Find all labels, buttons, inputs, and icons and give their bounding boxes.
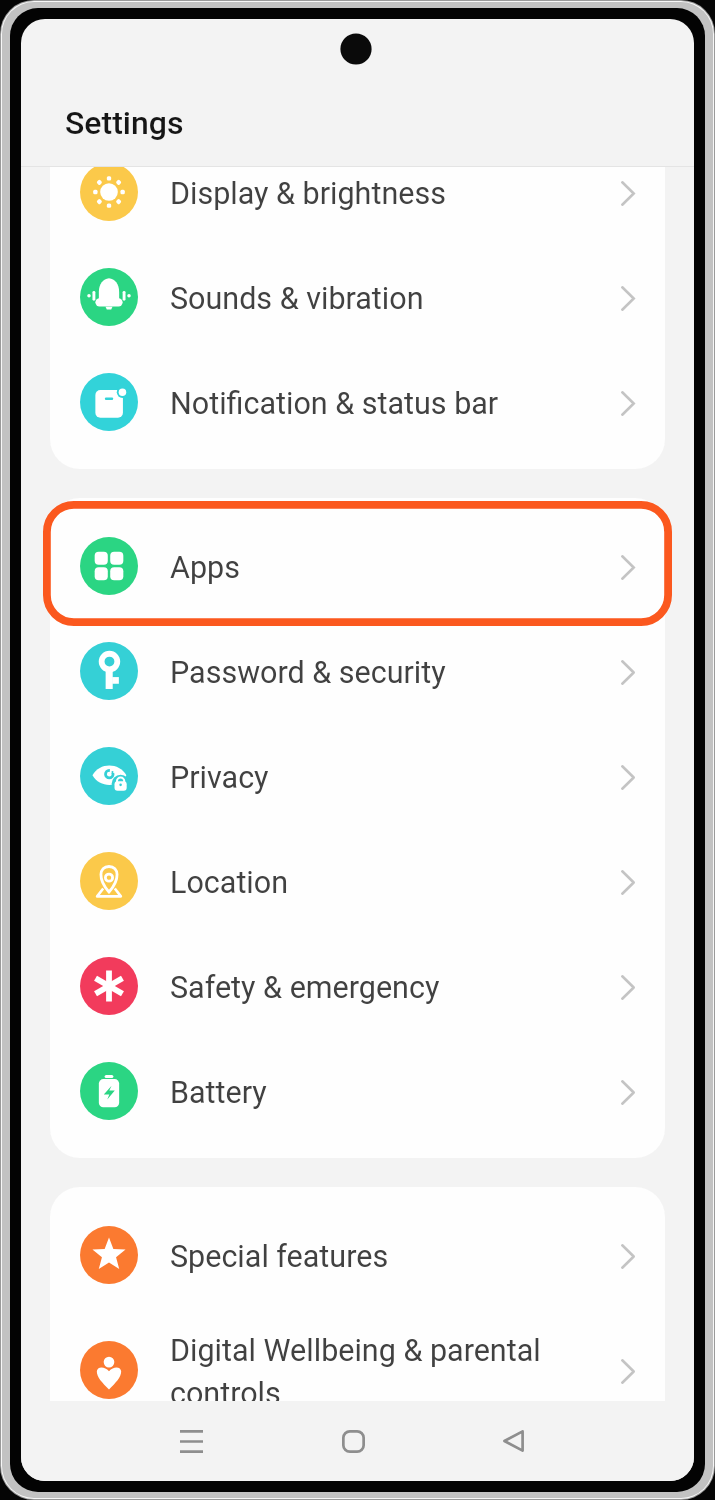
- button[interactable]: Notification & status bar: [50, 349, 665, 454]
- button[interactable]: Safety & emergency: [50, 933, 665, 1038]
- button[interactable]: Sounds & vibration: [50, 244, 665, 349]
- staticText: Privacy: [170, 760, 269, 796]
- staticText: Password & security: [170, 655, 446, 691]
- staticText: Safety & emergency: [170, 970, 440, 1006]
- staticText: Notification & status bar: [170, 386, 499, 422]
- staticText: Sounds & vibration: [170, 281, 424, 317]
- button[interactable]: Display & brightness: [50, 167, 665, 244]
- button[interactable]: Apps: [50, 513, 665, 618]
- button[interactable]: Home: [322, 1410, 384, 1472]
- button[interactable]: Recent apps: [160, 1410, 222, 1472]
- button[interactable]: Privacy: [50, 723, 665, 828]
- staticText: Settings: [65, 104, 184, 142]
- staticText: Digital Wellbeing & parental controls: [170, 1333, 542, 1401]
- staticText: Location: [170, 865, 289, 901]
- staticText: Special features: [170, 1239, 389, 1275]
- button[interactable]: Digital Wellbeing & parental controls: [50, 1307, 665, 1401]
- staticText: Battery: [170, 1075, 267, 1111]
- button[interactable]: Password & security: [50, 618, 665, 723]
- button[interactable]: Special features: [50, 1202, 665, 1307]
- button[interactable]: Back: [482, 1410, 544, 1472]
- button[interactable]: Location: [50, 828, 665, 933]
- staticText: Display & brightness: [170, 176, 446, 212]
- staticText: Apps: [170, 550, 240, 586]
- button[interactable]: Battery: [50, 1038, 665, 1143]
